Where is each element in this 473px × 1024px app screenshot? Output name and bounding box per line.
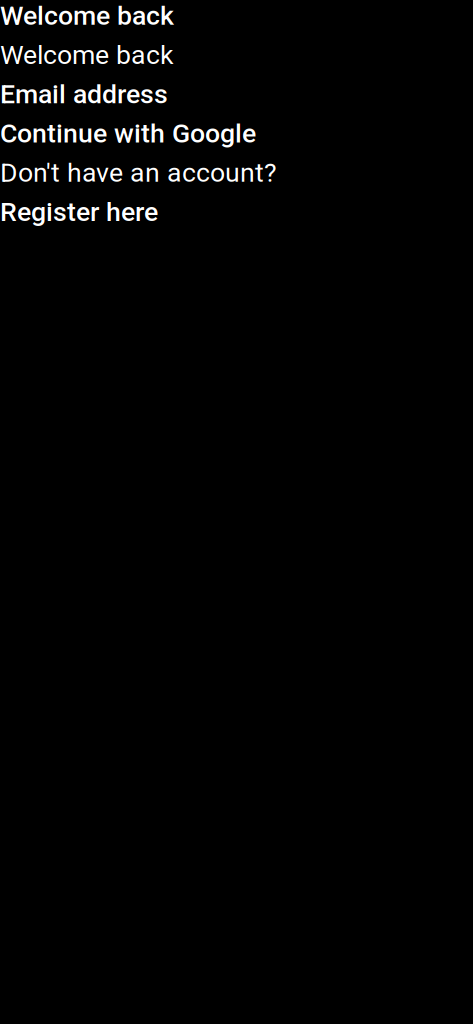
staticText: Welcome back xyxy=(0,0,174,31)
staticText: Email address xyxy=(0,78,168,110)
staticText: Welcome back xyxy=(0,39,174,71)
staticText: Don't have an account? xyxy=(0,157,277,188)
staticText: Continue with Google xyxy=(0,118,256,149)
staticText: Register here xyxy=(0,196,158,228)
